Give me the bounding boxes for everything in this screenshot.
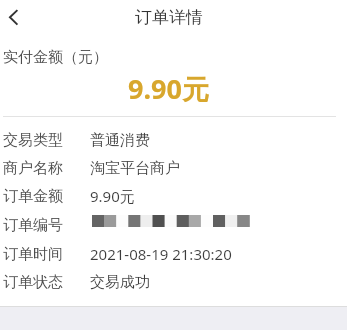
staticText: 商户名称 xyxy=(3,159,63,178)
staticText: 普通消费 xyxy=(90,131,150,150)
button[interactable]: 商户名称 xyxy=(0,157,347,179)
staticText: 交易类型 xyxy=(3,131,63,150)
button[interactable]: 订单状态 xyxy=(0,271,347,293)
staticText: 交易成功 xyxy=(90,273,150,292)
button[interactable]: 交易类型 xyxy=(0,129,347,151)
button[interactable]: Back xyxy=(0,0,27,35)
button[interactable]: 订单时间 xyxy=(0,243,347,265)
staticText: 订单编号 xyxy=(3,216,63,235)
staticText: 订单金额 xyxy=(3,187,63,206)
staticText: 订单详情 xyxy=(0,7,338,28)
staticText: 2021-08-19 21:30:20 xyxy=(90,244,232,264)
staticText: 9.90元 xyxy=(90,186,135,206)
button[interactable]: 订单金额 xyxy=(0,185,347,207)
staticText: 实付金额（元） xyxy=(3,48,108,67)
staticText: 9.90元 xyxy=(0,70,337,107)
staticText: 订单状态 xyxy=(3,273,63,292)
staticText: 订单时间 xyxy=(3,245,63,264)
button[interactable]: 订单编号 已隐藏 xyxy=(0,214,347,236)
staticText: 淘宝平台商户 xyxy=(90,159,180,178)
